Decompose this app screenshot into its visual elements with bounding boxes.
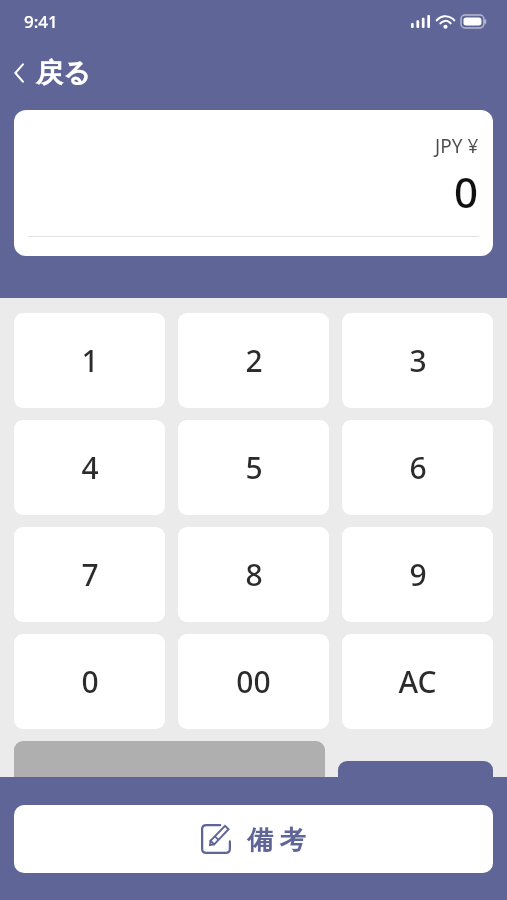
staticText: 3	[409, 340, 427, 381]
staticText: 7	[81, 554, 99, 595]
button[interactable]: 2	[178, 313, 329, 408]
button[interactable]: 1	[14, 313, 165, 408]
staticText: 5	[245, 447, 263, 488]
button[interactable]: 8	[178, 527, 329, 622]
button[interactable]: 0	[14, 634, 165, 729]
staticText: 8	[245, 554, 263, 595]
button[interactable]: JPY ¥	[14, 110, 493, 256]
button[interactable]: 6	[342, 420, 493, 515]
button[interactable]: Confirm	[338, 761, 493, 856]
button[interactable]: 00	[178, 634, 329, 729]
staticText: 9	[409, 554, 427, 595]
button[interactable]: Delete	[14, 741, 325, 836]
button[interactable]: 備 考	[14, 805, 493, 873]
staticText: AC	[398, 661, 437, 702]
staticText: 戻る	[36, 56, 91, 90]
staticText: 備 考	[247, 821, 306, 857]
staticText: 1	[81, 340, 99, 381]
staticText: 9:41	[24, 10, 58, 33]
staticText: 6	[409, 447, 427, 488]
button[interactable]: 4	[14, 420, 165, 515]
staticText: JPY ¥	[435, 133, 479, 159]
staticText: 00	[236, 661, 271, 702]
staticText: 0	[81, 661, 99, 702]
button[interactable]: 5	[178, 420, 329, 515]
staticText: 2	[245, 340, 263, 381]
staticText: 4	[81, 447, 99, 488]
button[interactable]: 戻る	[12, 46, 91, 100]
button[interactable]: 7	[14, 527, 165, 622]
button[interactable]: AC	[342, 634, 493, 729]
button[interactable]: 9	[342, 527, 493, 622]
staticText: 0	[454, 163, 479, 220]
button[interactable]: 3	[342, 313, 493, 408]
